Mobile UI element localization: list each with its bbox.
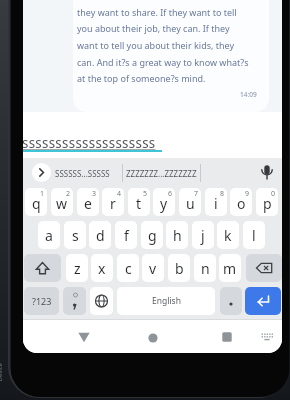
button[interactable] <box>253 324 281 350</box>
staticText: v <box>149 259 157 278</box>
staticText: SSSSSS...SSSSS <box>55 168 110 179</box>
staticText: 6 <box>168 189 173 199</box>
button[interactable]: i <box>205 188 227 216</box>
staticText: y <box>160 194 168 213</box>
button[interactable] <box>220 287 242 315</box>
staticText: 5 <box>143 189 148 199</box>
button[interactable] <box>70 324 98 350</box>
button[interactable]: r <box>102 188 124 216</box>
button[interactable] <box>90 287 113 315</box>
staticText: r <box>110 194 116 213</box>
staticText: can. And it?s a great way to know what?s <box>77 56 249 68</box>
staticText: h <box>173 226 182 245</box>
staticText: at the top of someone?s mind. <box>77 72 206 84</box>
staticText: 9 <box>245 189 250 199</box>
staticText: m <box>223 259 237 278</box>
button[interactable]: y <box>153 188 175 216</box>
staticText: you about their job, they can. If they <box>77 22 230 34</box>
staticText: q <box>32 194 41 213</box>
button[interactable]: SSSSSSSSSSSSSSSSSSSS <box>23 112 282 158</box>
button[interactable]: f <box>115 221 137 249</box>
staticText: b <box>175 259 184 278</box>
staticText: 8 <box>220 189 225 199</box>
staticText: k <box>224 226 232 245</box>
staticText: j <box>201 226 205 245</box>
button[interactable]: SSSSSS...SSSSS <box>50 158 114 188</box>
staticText: want to tell you about their kids, they <box>77 39 235 51</box>
button[interactable]: a <box>38 221 60 249</box>
staticText: c <box>125 259 132 278</box>
staticText: x <box>98 259 106 278</box>
staticText: 3 <box>92 189 97 199</box>
staticText: 1 <box>40 189 45 199</box>
staticText: 2 <box>66 189 71 199</box>
button[interactable]: x <box>91 254 113 282</box>
button[interactable]: v <box>142 254 164 282</box>
button[interactable] <box>24 254 61 282</box>
button[interactable]: g <box>141 221 163 249</box>
button[interactable]: s <box>64 221 86 249</box>
staticText: n <box>201 259 210 278</box>
staticText: SSSSSSSSSSSSSSSSSSSS <box>23 136 156 152</box>
button[interactable] <box>63 287 86 315</box>
button[interactable] <box>255 158 279 188</box>
button[interactable]: p <box>256 188 278 216</box>
staticText: 14:09 <box>240 90 257 99</box>
staticText: u <box>186 194 195 213</box>
staticText: they want to share. If they want to tell <box>77 6 237 18</box>
button[interactable] <box>139 324 167 350</box>
button[interactable]: m <box>219 254 241 282</box>
button[interactable]: l <box>243 221 265 249</box>
button[interactable]: t <box>128 188 150 216</box>
button[interactable]: e <box>77 188 99 216</box>
staticText: 4 <box>117 189 122 199</box>
button[interactable] <box>32 163 51 182</box>
button[interactable]: o <box>230 188 252 216</box>
button[interactable]: h <box>166 221 188 249</box>
staticText: f <box>124 226 129 245</box>
button[interactable] <box>246 254 282 282</box>
staticText: Device <box>0 362 3 381</box>
button[interactable]: n <box>194 254 216 282</box>
staticText: s <box>72 226 79 245</box>
staticText: i <box>214 194 218 213</box>
button[interactable] <box>213 324 241 350</box>
staticText: a <box>45 226 53 245</box>
staticText: l <box>252 226 256 245</box>
button[interactable]: w <box>51 188 73 216</box>
button[interactable] <box>245 287 281 315</box>
button[interactable]: j <box>192 221 214 249</box>
staticText: z <box>74 259 81 278</box>
staticText: ?123 <box>32 295 52 307</box>
staticText: w <box>56 194 68 213</box>
button[interactable]: z <box>66 254 88 282</box>
button[interactable]: b <box>168 254 190 282</box>
button[interactable]: d <box>89 221 111 249</box>
staticText: 0 <box>271 189 276 199</box>
button[interactable]: u <box>179 188 201 216</box>
staticText: p <box>263 194 272 213</box>
button[interactable]: ZZZZZZZ...ZZZZZZZ <box>124 158 198 188</box>
staticText: English <box>152 295 181 307</box>
button[interactable]: k <box>217 221 239 249</box>
staticText: e <box>84 194 92 213</box>
staticText: ZZZZZZZ...ZZZZZZZ <box>126 168 197 179</box>
staticText: t <box>136 194 142 213</box>
staticText: g <box>148 226 157 245</box>
button[interactable]: ?123 <box>24 287 59 315</box>
staticText: o <box>237 194 246 213</box>
staticText: d <box>96 226 105 245</box>
button[interactable]: English <box>117 287 215 315</box>
button[interactable]: q <box>25 188 47 216</box>
button[interactable]: c <box>117 254 139 282</box>
staticText: 7 <box>194 189 199 199</box>
